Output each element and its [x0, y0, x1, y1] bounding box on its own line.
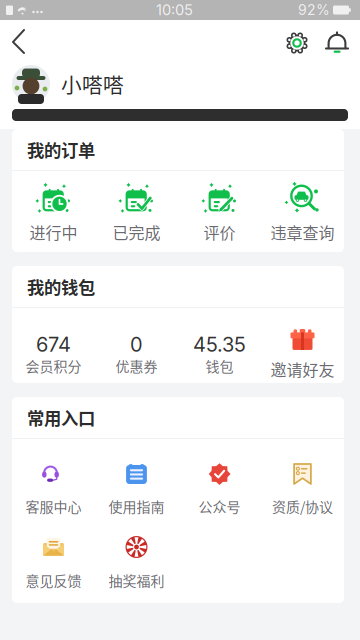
- staticText: 优惠券: [115, 355, 157, 376]
- button[interactable]: 674: [12, 332, 95, 376]
- staticText: 使用指南: [108, 496, 164, 516]
- staticText: 进行中: [29, 220, 77, 244]
- staticText: 674: [36, 332, 71, 356]
- staticText: 已完成: [112, 220, 160, 244]
- staticText: 10:05: [156, 1, 193, 19]
- button[interactable]: 0: [95, 332, 178, 376]
- staticText: 意见反馈: [25, 570, 81, 590]
- button[interactable]: 意见反馈: [12, 533, 95, 607]
- button[interactable]: Settings: [284, 20, 310, 60]
- staticText: 0: [130, 332, 143, 356]
- staticText: 小嗒嗒: [61, 69, 124, 99]
- staticText: 我的订单: [27, 137, 95, 162]
- staticText: 抽奖福利: [108, 570, 164, 590]
- button[interactable]: 公众号: [178, 459, 261, 533]
- button[interactable]: 资质/协议: [261, 459, 344, 533]
- staticText: 常用入口: [27, 405, 95, 430]
- staticText: 92%: [298, 1, 330, 18]
- button[interactable]: 已完成: [95, 175, 178, 247]
- button[interactable]: 客服中心: [12, 459, 95, 533]
- staticText: 钱包: [205, 355, 233, 376]
- button[interactable]: Back: [0, 20, 38, 60]
- staticText: 邀请好友: [270, 357, 334, 381]
- staticText: 45.35: [193, 332, 246, 356]
- staticText: 资质/协议: [272, 496, 333, 516]
- staticText: 评价: [203, 220, 235, 244]
- button[interactable]: 45.35: [178, 332, 261, 376]
- button[interactable]: Notifications: [324, 20, 350, 60]
- button[interactable]: 违章查询: [261, 175, 344, 247]
- button[interactable]: 进行中: [12, 175, 95, 247]
- button[interactable]: 使用指南: [95, 459, 178, 533]
- staticText: 客服中心: [25, 496, 81, 516]
- button[interactable]: 抽奖福利: [95, 533, 178, 607]
- staticText: 会员积分: [25, 355, 81, 376]
- button[interactable]: 邀请好友: [261, 328, 344, 380]
- staticText: 公众号: [198, 496, 240, 516]
- staticText: 违章查询: [270, 220, 334, 244]
- staticText: 我的钱包: [27, 274, 95, 299]
- button[interactable]: 小嗒嗒: [0, 60, 360, 108]
- button[interactable]: 评价: [178, 175, 261, 247]
